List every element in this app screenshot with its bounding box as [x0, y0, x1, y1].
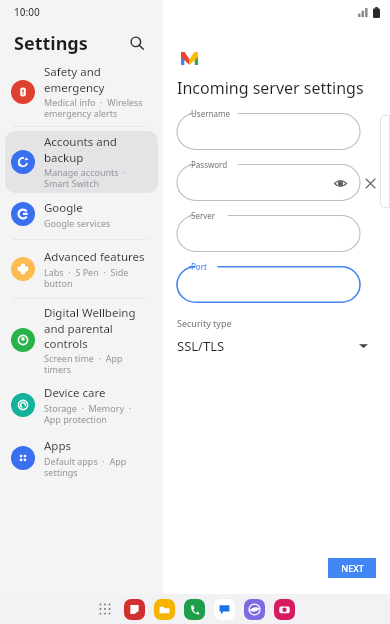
staticText: NEXT: [341, 562, 364, 574]
staticText: Incoming server settings: [177, 77, 364, 99]
staticText: Username: [191, 108, 230, 119]
button[interactable]: Camera: [274, 599, 295, 620]
staticText: Screen time · App timers: [44, 352, 150, 376]
staticText: Medical info · Wireless emergency alerts: [44, 96, 150, 120]
button[interactable]: Accounts and backup: [5, 131, 158, 193]
staticText: Apps: [44, 438, 72, 454]
staticText: Password: [191, 159, 228, 170]
button[interactable]: Port: [177, 266, 360, 303]
staticText: Port: [191, 261, 207, 272]
button[interactable]: Show password: [332, 175, 348, 191]
button[interactable]: Internet: [244, 599, 265, 620]
staticText: Digital Wellbeing and parental controls: [44, 305, 150, 351]
button[interactable]: Password: [177, 164, 360, 201]
button[interactable]: Clear: [360, 173, 380, 193]
staticText: Device care: [44, 385, 106, 401]
staticText: Storage · Memory · App protection: [44, 402, 150, 426]
staticText: Google services: [44, 217, 111, 229]
button[interactable]: Apps: [5, 433, 158, 483]
staticText: Security type: [177, 317, 232, 329]
staticText: 10:00: [14, 5, 40, 19]
button[interactable]: Server: [177, 215, 360, 252]
button[interactable]: Username: [177, 113, 360, 150]
button[interactable]: Device care: [5, 377, 158, 433]
button[interactable]: Notes: [124, 599, 145, 620]
staticText: Server: [191, 210, 216, 221]
staticText: Settings: [14, 31, 88, 56]
button[interactable]: Safety and emergency: [5, 62, 158, 122]
button[interactable]: Messages: [214, 599, 235, 620]
staticText: Accounts and backup: [44, 134, 150, 165]
button[interactable]: My Files: [154, 599, 175, 620]
staticText: Manage accounts · Smart Switch: [44, 166, 150, 190]
button[interactable]: All apps: [95, 599, 115, 619]
staticText: Safety and emergency: [44, 64, 150, 95]
button[interactable]: Phone: [184, 599, 205, 620]
button[interactable]: Advanced features: [5, 244, 158, 294]
staticText: Advanced features: [44, 249, 145, 265]
button[interactable]: SSL/TLS: [163, 335, 390, 357]
button[interactable]: Google: [5, 193, 158, 235]
button[interactable]: Search: [125, 31, 149, 55]
staticText: Default apps · App settings: [44, 455, 150, 479]
button[interactable]: Digital Wellbeing and parental controls: [5, 303, 158, 377]
staticText: Labs · S Pen · Side button: [44, 266, 150, 290]
button[interactable]: NEXT: [328, 558, 376, 578]
staticText: Google: [44, 200, 83, 216]
staticText: SSL/TLS: [177, 337, 225, 355]
